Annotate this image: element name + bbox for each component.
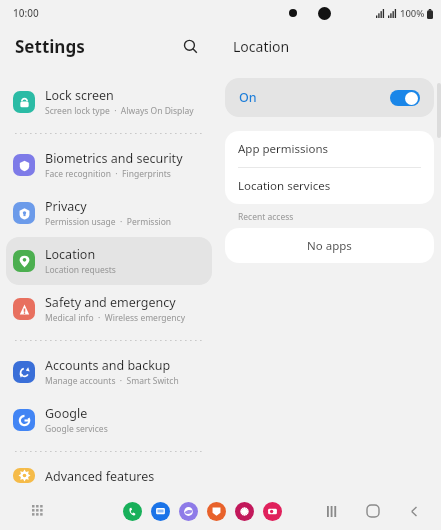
staticText: Location: [45, 246, 96, 263]
button[interactable]: internet: [179, 502, 198, 521]
staticText: Permission usage · Permission manager: [45, 216, 204, 228]
staticText: Face recognition · Fingerprints: [45, 168, 171, 180]
staticText: Location: [233, 37, 290, 56]
button[interactable]: Home: [362, 500, 384, 522]
button[interactable]: Lock screen: [6, 78, 212, 126]
button[interactable]: Apps: [26, 499, 50, 523]
button[interactable]: Location: [6, 237, 212, 285]
staticText: Location services: [238, 178, 331, 194]
staticText: Location requests: [45, 264, 116, 276]
staticText: Screen lock type · Always On Display: [45, 105, 194, 117]
button[interactable]: store: [207, 502, 226, 521]
staticText: Google services: [45, 423, 108, 435]
button[interactable]: Accounts and backup: [6, 348, 212, 396]
staticText: 100%: [400, 7, 425, 20]
staticText: On: [239, 89, 257, 106]
button[interactable]: Recents: [321, 500, 343, 522]
staticText: Biometrics and security: [45, 150, 183, 167]
staticText: Google: [45, 405, 88, 422]
button[interactable]: On: [225, 78, 434, 117]
button[interactable]: Back: [403, 500, 425, 522]
button[interactable]: phone: [123, 502, 142, 521]
staticText: Settings: [15, 35, 85, 58]
button[interactable]: msg: [151, 502, 170, 521]
staticText: Lock screen: [45, 87, 114, 104]
button[interactable]: camera: [263, 502, 282, 521]
staticText: Manage accounts · Smart Switch: [45, 375, 179, 387]
button[interactable]: Location services: [225, 168, 434, 204]
button[interactable]: Search: [176, 32, 204, 60]
staticText: Advanced features: [45, 468, 155, 483]
staticText: Medical info · Wireless emergency alerts: [45, 312, 204, 324]
button[interactable]: App permissions: [225, 131, 434, 167]
staticText: Recent access: [238, 211, 294, 223]
staticText: App permissions: [238, 141, 329, 157]
staticText: No apps: [307, 238, 352, 254]
button[interactable]: Safety and emergency: [6, 285, 212, 333]
button[interactable]: Google: [6, 396, 212, 444]
button[interactable]: gallery: [235, 502, 254, 521]
staticText: Accounts and backup: [45, 357, 171, 374]
button[interactable]: Privacy: [6, 189, 212, 237]
staticText: Safety and emergency: [45, 294, 176, 311]
staticText: 10:00: [13, 6, 39, 20]
staticText: Privacy: [45, 198, 87, 215]
button[interactable]: Biometrics and security: [6, 141, 212, 189]
button[interactable]: Advanced features: [6, 459, 212, 492]
